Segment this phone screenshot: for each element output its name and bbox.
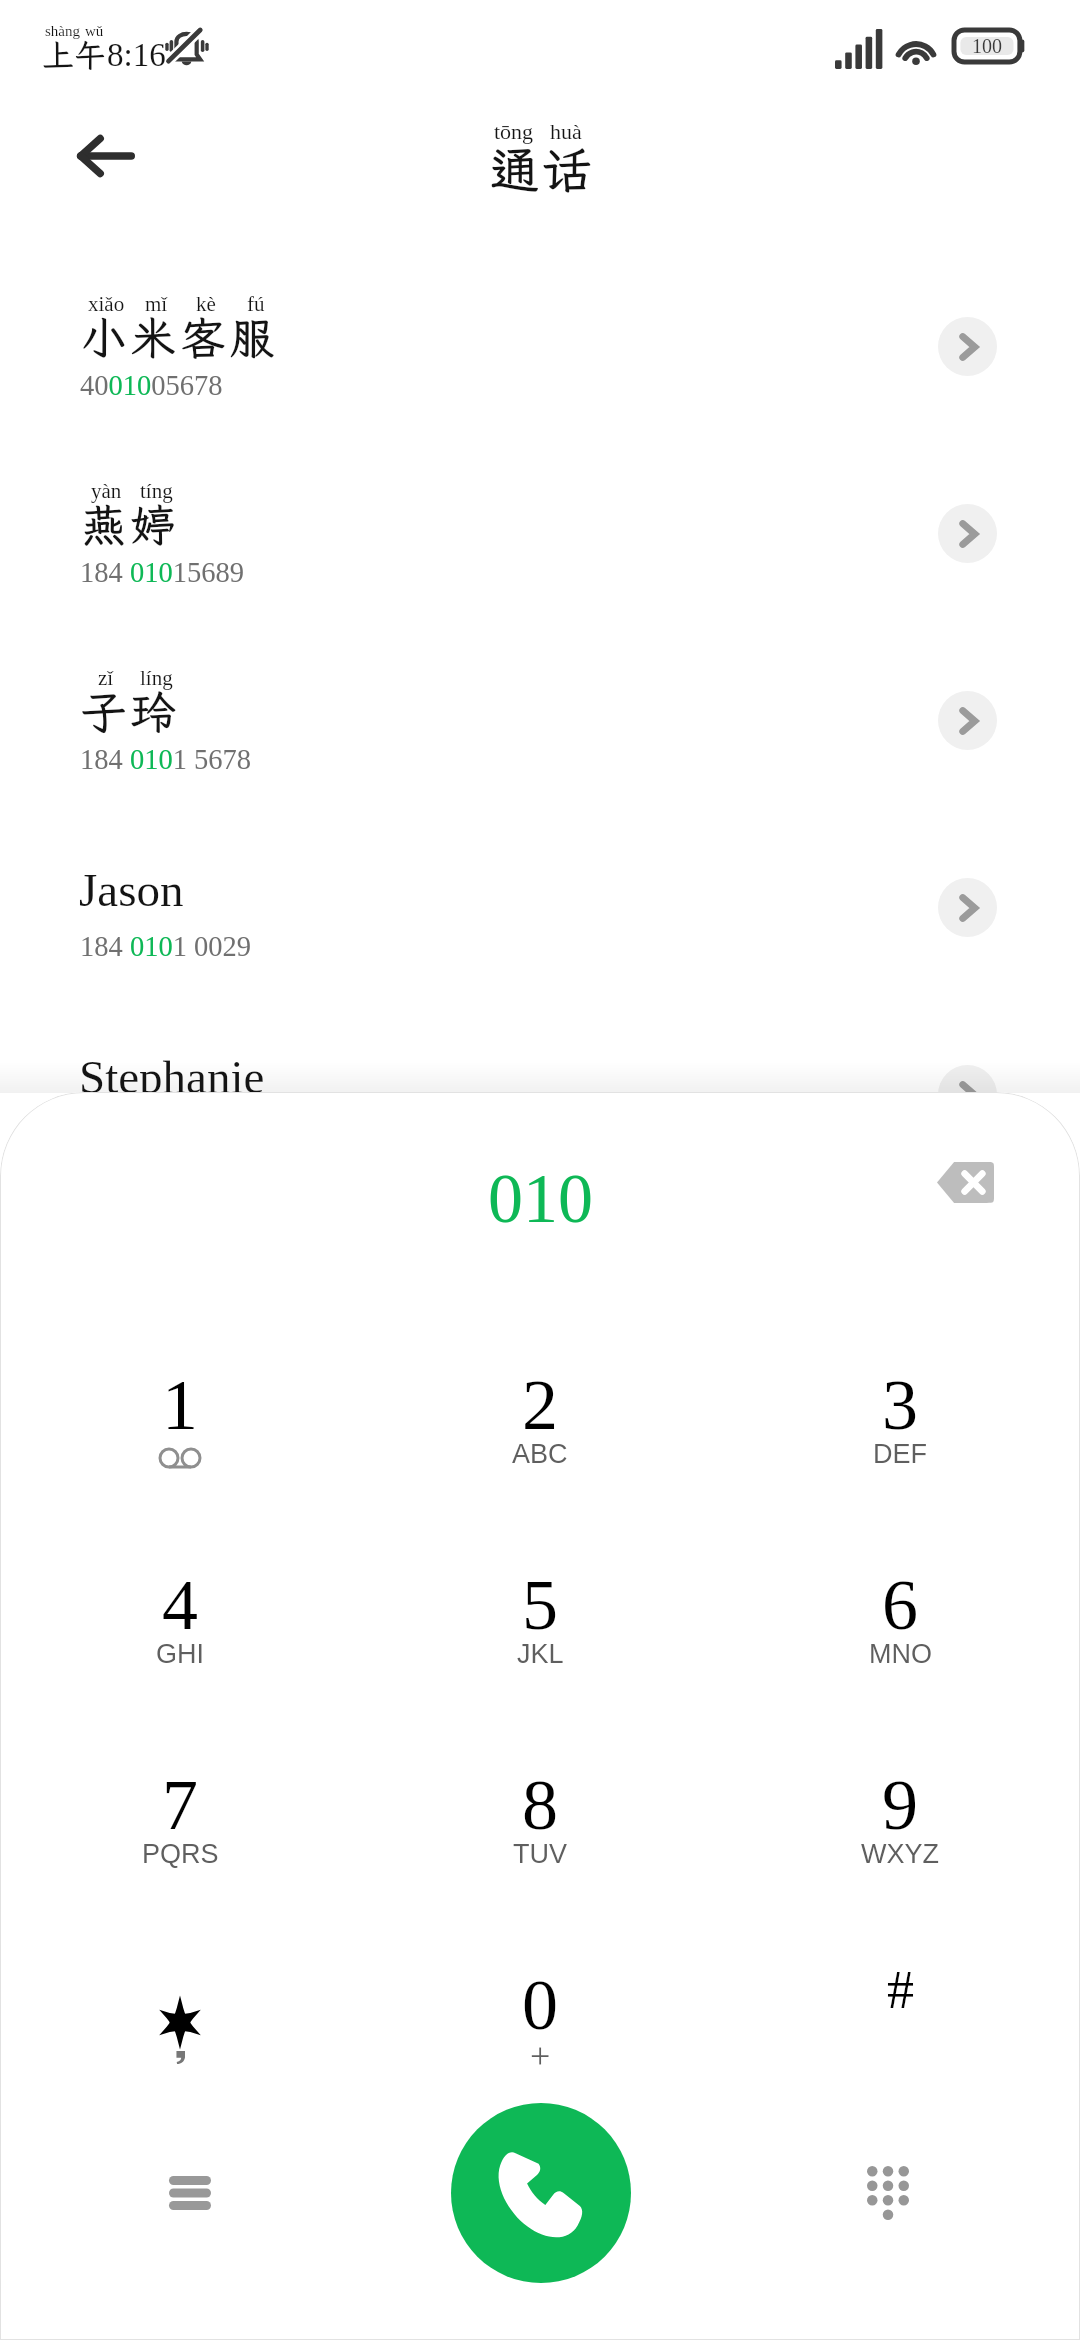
button[interactable]: xiǎo bbox=[0, 281, 1080, 457]
staticText: yàn bbox=[91, 479, 122, 502]
staticText: 010 bbox=[488, 1160, 593, 1238]
staticText: 184 0101 0029 bbox=[80, 931, 251, 963]
staticText: tōng bbox=[494, 119, 534, 143]
staticText: 0 bbox=[522, 1965, 558, 2045]
button[interactable]: 0 bbox=[360, 1936, 720, 2131]
staticText: 8:16 bbox=[107, 37, 166, 74]
staticText: # bbox=[887, 1960, 914, 2020]
staticText: 3 bbox=[882, 1365, 918, 1445]
staticText: 100 bbox=[972, 35, 1002, 57]
staticText: 燕婷 bbox=[81, 495, 181, 554]
staticText: 话 bbox=[541, 136, 591, 202]
button[interactable]: 9 bbox=[720, 1736, 1080, 1931]
staticText: 4 bbox=[162, 1565, 198, 1645]
staticText: 4001005678 bbox=[80, 370, 223, 402]
staticText: 通 bbox=[490, 136, 540, 202]
button[interactable]: 2 bbox=[360, 1336, 720, 1531]
staticText: 上午 bbox=[42, 34, 107, 76]
staticText: GHI bbox=[156, 1639, 205, 1669]
staticText: shàng bbox=[45, 23, 80, 40]
button[interactable]: # bbox=[720, 1936, 1080, 2131]
staticText: 7 bbox=[162, 1765, 198, 1845]
staticText: líng bbox=[140, 666, 173, 689]
staticText: WXYZ bbox=[861, 1839, 939, 1869]
staticText: TUV bbox=[513, 1839, 567, 1869]
button[interactable]: Stephanie bbox=[0, 1029, 1080, 1205]
staticText: 184 0101 5678 bbox=[80, 744, 251, 776]
staticText: 小米客服 bbox=[81, 308, 280, 367]
button[interactable]: 6 bbox=[720, 1536, 1080, 1731]
staticText: kè bbox=[196, 292, 216, 315]
button[interactable]: 8 bbox=[360, 1736, 720, 1931]
staticText: DEF bbox=[873, 1439, 927, 1469]
staticText: 6 bbox=[882, 1565, 918, 1645]
staticText: 9 bbox=[882, 1765, 918, 1845]
staticText: Jason bbox=[79, 864, 184, 916]
button[interactable]: Jason bbox=[0, 842, 1080, 1018]
button[interactable]: Keypad bbox=[848, 2153, 928, 2233]
staticText: + bbox=[530, 2036, 551, 2076]
button[interactable]: 5 bbox=[360, 1536, 720, 1731]
button[interactable]: zǐ bbox=[0, 655, 1080, 831]
staticText: 2 bbox=[522, 1365, 558, 1445]
staticText: tíng bbox=[140, 479, 173, 502]
staticText: wǔ bbox=[85, 23, 104, 40]
staticText: huà bbox=[550, 119, 582, 143]
button[interactable]: Call bbox=[451, 2103, 631, 2283]
staticText: 8 bbox=[522, 1765, 558, 1845]
staticText: fú bbox=[247, 292, 265, 315]
button[interactable]: yàn bbox=[0, 468, 1080, 644]
button[interactable]: 4 bbox=[0, 1536, 360, 1731]
button[interactable]: 7 bbox=[0, 1736, 360, 1931]
staticText: xiǎo bbox=[88, 292, 125, 315]
staticText: zǐ bbox=[98, 666, 114, 689]
staticText: 184 01015689 bbox=[80, 557, 244, 589]
button[interactable]: 1 bbox=[0, 1336, 360, 1531]
button[interactable]: 3 bbox=[720, 1336, 1080, 1531]
staticText: 5 bbox=[522, 1565, 558, 1645]
staticText: 1 bbox=[162, 1365, 198, 1445]
staticText: PQRS bbox=[142, 1839, 219, 1869]
staticText: Stephanie bbox=[79, 1051, 265, 1103]
button[interactable]: Backspace bbox=[921, 1147, 1009, 1217]
button[interactable] bbox=[0, 1936, 360, 2131]
staticText: MNO bbox=[869, 1639, 932, 1669]
button[interactable]: Back bbox=[66, 116, 146, 196]
staticText: JKL bbox=[517, 1639, 564, 1669]
staticText: ABC bbox=[512, 1439, 568, 1469]
staticText: 子玲 bbox=[81, 682, 181, 741]
button[interactable]: Call log bbox=[150, 2153, 230, 2233]
staticText: mǐ bbox=[145, 292, 168, 315]
